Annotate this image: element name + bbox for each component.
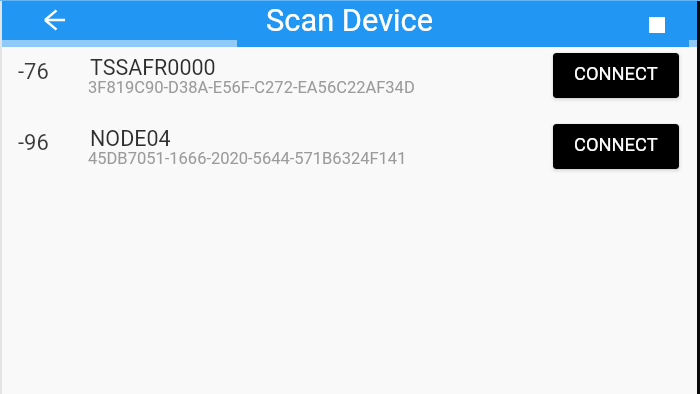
staticText: Scan Device (266, 2, 434, 38)
staticText: TSSAFR0000 (90, 55, 216, 80)
button[interactable]: Stop scanning (637, 0, 677, 40)
button[interactable]: CONNECT (553, 53, 679, 98)
staticText: 3F819C90-D38A-E56F-C272-EA56C22AF34D (88, 78, 415, 97)
button[interactable]: -96 (0, 118, 700, 189)
button[interactable]: Back (31, 0, 79, 40)
button[interactable]: CONNECT (553, 124, 679, 169)
staticText: 45DB7051-1666-2020-5644-571B6324F141 (88, 149, 407, 168)
staticText: -76 (18, 59, 49, 85)
staticText: CONNECT (574, 63, 658, 84)
staticText: -96 (18, 130, 49, 156)
staticText: CONNECT (574, 134, 658, 155)
button[interactable]: -76 (0, 47, 700, 118)
staticText: NODE04 (90, 126, 171, 151)
